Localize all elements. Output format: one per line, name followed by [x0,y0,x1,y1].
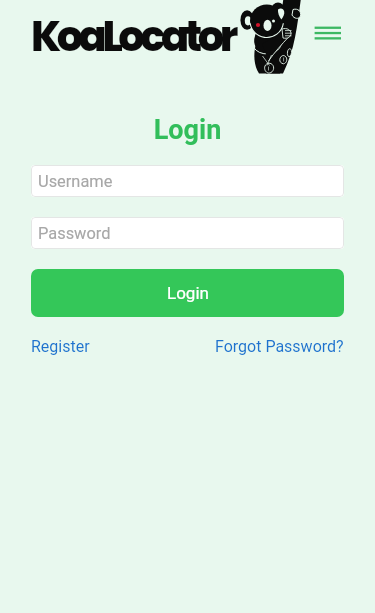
button[interactable]: Login [31,269,344,317]
staticText: Username [38,172,113,191]
button[interactable]: Password [31,217,344,249]
staticText: Password [38,224,111,243]
button[interactable]: Username [31,165,344,197]
button[interactable]: Register [31,337,90,356]
button[interactable]: Menu [305,16,351,50]
button[interactable]: Forgot Password? [215,337,344,356]
staticText: Login [167,283,209,303]
staticText: Login [0,114,375,146]
staticText: KoaLocator [31,7,234,65]
